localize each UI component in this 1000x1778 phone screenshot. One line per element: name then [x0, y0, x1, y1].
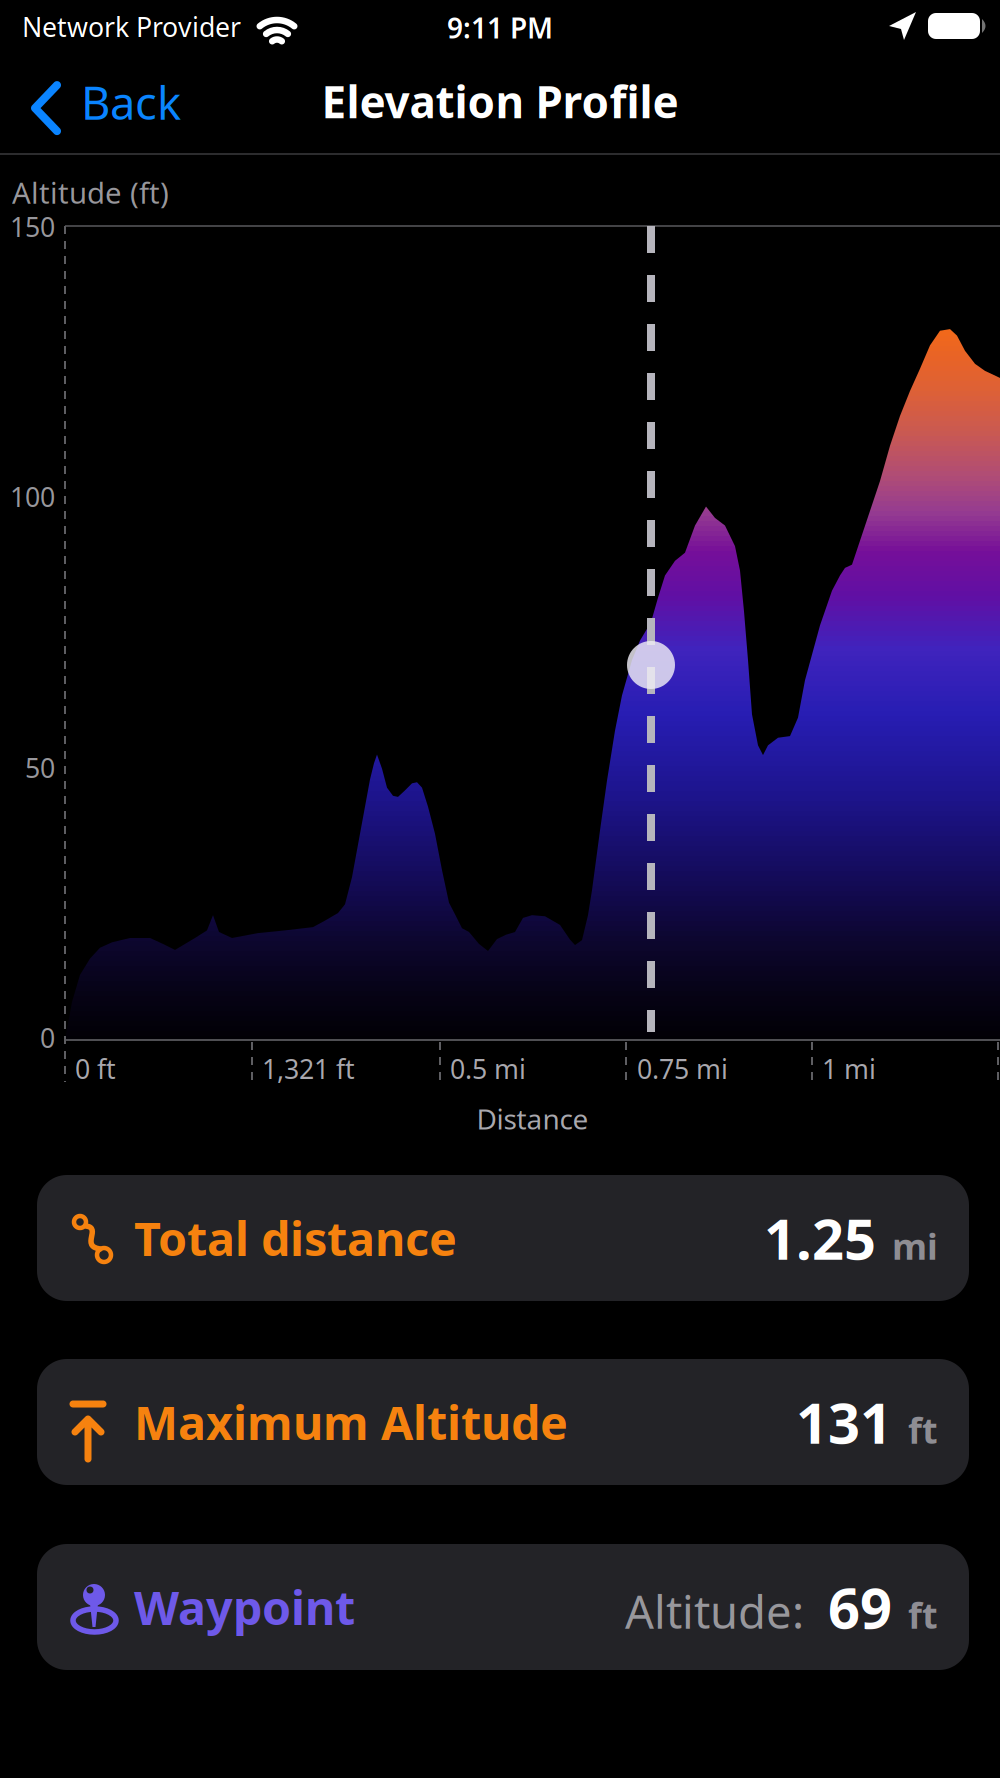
staticText: ft	[908, 1406, 938, 1454]
staticText: 1,321 ft	[262, 1051, 355, 1086]
staticText: 150	[10, 209, 55, 244]
staticText: Waypoint	[134, 1576, 355, 1638]
staticText: Maximum Altitude	[134, 1391, 568, 1453]
staticText: 0.5 mi	[450, 1051, 526, 1086]
staticText: 0	[40, 1020, 55, 1055]
staticText: 0 ft	[75, 1051, 116, 1086]
staticText: Distance	[476, 1100, 588, 1137]
staticText: 50	[25, 750, 55, 785]
staticText: ft	[908, 1591, 938, 1639]
staticText: Altitude (ft)	[12, 173, 169, 212]
staticText: 69	[828, 1570, 892, 1644]
staticText: Altitude:	[625, 1581, 804, 1641]
staticText: Elevation Profile	[321, 72, 678, 130]
staticText: 1.25	[764, 1201, 876, 1275]
staticText: 1 mi	[822, 1051, 876, 1086]
staticText: mi	[892, 1222, 938, 1270]
button[interactable]: Back	[33, 72, 181, 132]
staticText: 0.75 mi	[637, 1051, 728, 1086]
staticText: 100	[10, 479, 55, 514]
staticText: 9:11 PM	[447, 9, 553, 46]
staticText: Back	[81, 72, 181, 132]
staticText: 131	[796, 1385, 892, 1459]
staticText: Total distance	[134, 1207, 457, 1269]
staticText: Network Provider	[22, 9, 241, 44]
